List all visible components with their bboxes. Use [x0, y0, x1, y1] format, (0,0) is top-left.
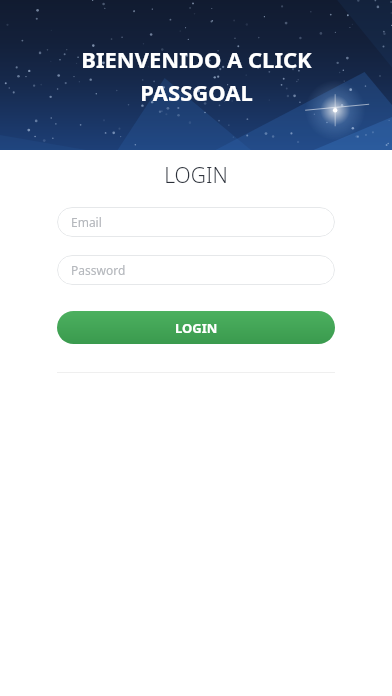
staticText: Password — [71, 262, 126, 278]
staticText: LOGIN — [0, 161, 392, 190]
staticText: Email — [71, 214, 102, 230]
staticText: BIENVENIDO A CLICK — [81, 44, 312, 74]
button[interactable]: Login — [57, 311, 335, 344]
staticText: LOGIN — [175, 319, 218, 337]
button[interactable]: Email — [57, 207, 335, 237]
staticText: PASSGOAL — [140, 77, 253, 107]
button[interactable]: Password — [57, 255, 335, 285]
